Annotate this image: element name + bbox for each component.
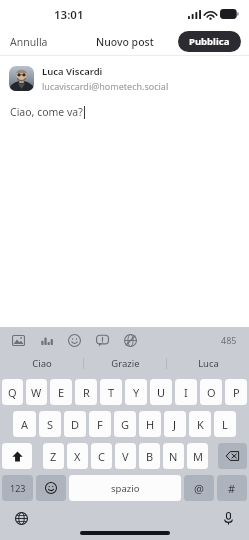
staticText: Ciao, come va?: [10, 105, 83, 119]
button[interactable]: Q: [2, 379, 23, 405]
staticText: @: [194, 481, 204, 496]
staticText: B: [146, 449, 154, 464]
button[interactable]: Emoji: [36, 475, 66, 501]
button[interactable]: Dettatura: [219, 509, 237, 527]
button[interactable]: M: [187, 443, 208, 469]
staticText: #: [228, 481, 236, 496]
button[interactable]: F: [89, 411, 111, 437]
staticText: D: [71, 417, 80, 432]
button[interactable]: H: [139, 411, 161, 437]
button[interactable]: I: [175, 379, 197, 405]
staticText: G: [121, 417, 130, 432]
button[interactable]: A: [13, 411, 36, 437]
button[interactable]: S: [39, 411, 61, 437]
staticText: T: [108, 385, 115, 400]
staticText: Luca Viscardi: [42, 65, 103, 78]
button[interactable]: E: [50, 379, 72, 405]
button[interactable]: Pubblica: [178, 31, 241, 52]
button[interactable]: Y: [125, 379, 147, 405]
button[interactable]: Annulla: [6, 32, 52, 52]
button[interactable]: K: [189, 411, 211, 437]
staticText: J: [173, 417, 177, 432]
staticText: Pubblica: [189, 35, 230, 48]
button[interactable]: Emoji: [66, 332, 82, 348]
button[interactable]: C: [91, 443, 112, 469]
button[interactable]: Ciao: [0, 353, 83, 374]
staticText: Luca: [198, 357, 219, 370]
button[interactable]: Visibilità: [122, 332, 138, 348]
staticText: Y: [133, 385, 140, 400]
staticText: Z: [50, 449, 57, 464]
button[interactable]: Maiuscole: [2, 443, 32, 469]
button[interactable]: L: [214, 411, 236, 437]
staticText: M: [193, 449, 203, 464]
staticText: V: [122, 449, 129, 464]
button[interactable]: Aggiungi immagine: [10, 332, 26, 348]
button[interactable]: P: [225, 379, 247, 405]
button[interactable]: 123: [2, 475, 33, 501]
button[interactable]: X: [67, 443, 88, 469]
button[interactable]: Grazie: [84, 353, 166, 374]
button[interactable]: Cambia lingua: [12, 509, 30, 527]
staticText: Annulla: [10, 35, 48, 49]
staticText: Nuovo post: [96, 35, 154, 49]
button[interactable]: spazio: [69, 475, 181, 501]
staticText: W: [31, 385, 42, 400]
staticText: F: [97, 417, 103, 432]
staticText: 13:01: [54, 7, 84, 23]
staticText: I: [184, 385, 188, 400]
staticText: spazio: [111, 482, 140, 495]
staticText: E: [58, 385, 65, 400]
button[interactable]: D: [64, 411, 86, 437]
button[interactable]: R: [75, 379, 97, 405]
staticText: O: [207, 385, 216, 400]
button[interactable]: @: [184, 475, 214, 501]
button[interactable]: Luca: [167, 353, 249, 374]
button[interactable]: W: [26, 379, 47, 405]
button[interactable]: O: [200, 379, 222, 405]
button[interactable]: Cancella: [218, 443, 247, 469]
button[interactable]: G: [114, 411, 136, 437]
staticText: A: [21, 417, 29, 432]
button[interactable]: T: [100, 379, 122, 405]
staticText: lucaviscardi@hometech.social: [42, 80, 169, 92]
button[interactable]: #: [217, 475, 247, 501]
button[interactable]: V: [115, 443, 136, 469]
staticText: U: [157, 385, 166, 400]
button[interactable]: U: [150, 379, 172, 405]
staticText: K: [197, 417, 204, 432]
staticText: C: [98, 449, 105, 464]
staticText: N: [169, 449, 178, 464]
button[interactable]: N: [163, 443, 184, 469]
staticText: P: [233, 385, 240, 400]
staticText: R: [83, 385, 90, 400]
staticText: Grazie: [111, 357, 140, 370]
staticText: 485: [221, 334, 237, 346]
staticText: S: [47, 417, 54, 432]
button[interactable]: Avviso contenuto: [94, 332, 110, 348]
staticText: H: [146, 417, 155, 432]
button[interactable]: B: [139, 443, 160, 469]
staticText: Q: [8, 385, 17, 400]
button[interactable]: Z: [43, 443, 64, 469]
staticText: X: [74, 449, 81, 464]
button[interactable]: Foto profilo: [9, 66, 34, 91]
button[interactable]: Sondaggio: [38, 332, 54, 348]
staticText: 123: [10, 482, 26, 494]
staticText: L: [222, 417, 228, 432]
button[interactable]: J: [164, 411, 186, 437]
staticText: Ciao: [32, 357, 52, 370]
